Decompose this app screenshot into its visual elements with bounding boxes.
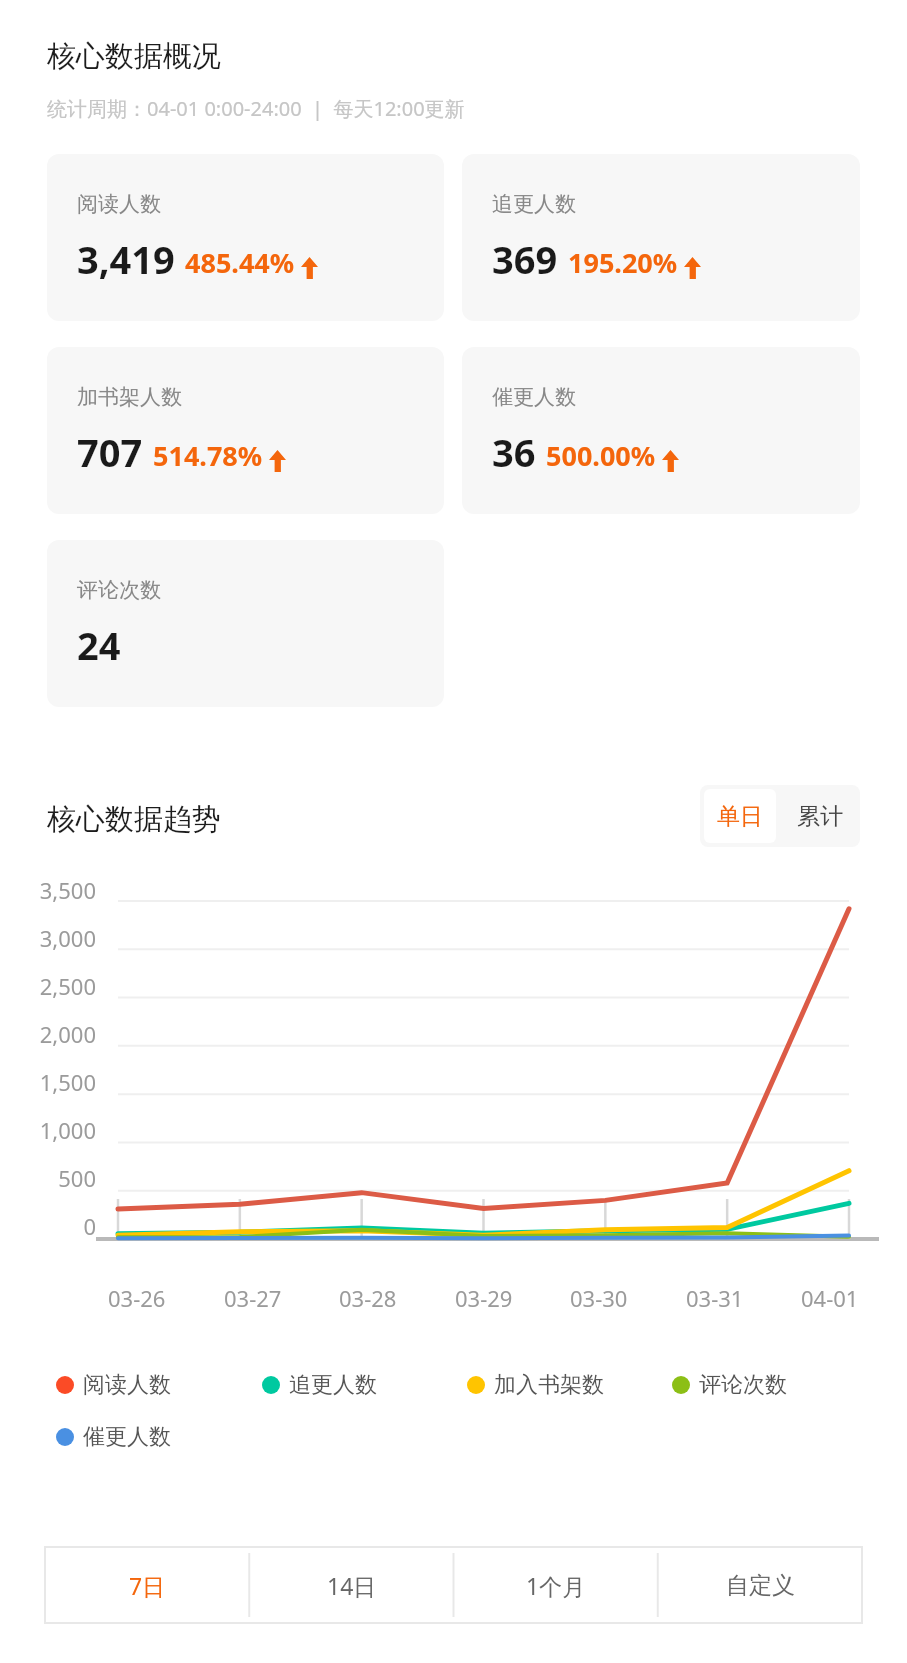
staticText: 追更人数 (289, 1371, 377, 1399)
staticText: 1个月 (526, 1570, 586, 1601)
staticText: 评论次数 (699, 1371, 787, 1399)
staticText: 03-27 (224, 1283, 282, 1313)
staticText: 03-29 (455, 1283, 513, 1313)
staticText: 195.20% (568, 244, 678, 281)
staticText: 催更人数 (492, 384, 576, 410)
staticText: 核心数据概况 (47, 38, 221, 75)
staticText: 03-31 (686, 1283, 744, 1313)
staticText: 0 (83, 1211, 96, 1241)
staticText: 04-01 (801, 1283, 859, 1313)
staticText: 加书架人数 (77, 384, 182, 410)
button[interactable]: 催更人数 (462, 347, 860, 514)
button[interactable]: 加书架人数 (47, 347, 444, 514)
staticText: 03-28 (339, 1283, 397, 1313)
staticText: 500.00% (546, 437, 656, 474)
staticText: 自定义 (726, 1571, 795, 1600)
staticText: 阅读人数 (77, 191, 161, 217)
staticText: 369 (492, 233, 558, 285)
staticText: 7日 (129, 1570, 166, 1601)
staticText: 500 (58, 1163, 96, 1193)
staticText: 3,000 (39, 923, 96, 953)
button[interactable]: 追更人数 (462, 154, 860, 321)
staticText: 514.78% (153, 437, 263, 474)
staticText: 追更人数 (492, 191, 576, 217)
button[interactable]: 阅读人数 (47, 154, 444, 321)
staticText: 单日 (717, 802, 763, 831)
staticText: 累计 (797, 802, 843, 831)
staticText: 03-30 (570, 1283, 628, 1313)
staticText: 2,000 (39, 1019, 96, 1049)
staticText: 707 (77, 426, 143, 478)
staticText: 核心数据趋势 (47, 801, 221, 838)
button[interactable]: 单日 (704, 789, 776, 843)
button[interactable]: 7日 (45, 1547, 250, 1623)
staticText: 1,500 (39, 1067, 96, 1097)
staticText: 14日 (327, 1570, 377, 1601)
staticText: 加入书架数 (494, 1371, 604, 1399)
staticText: 24 (77, 619, 121, 671)
button[interactable]: 1个月 (454, 1547, 658, 1623)
staticText: 3,419 (77, 233, 175, 285)
staticText: 1,000 (39, 1115, 96, 1145)
staticText: 评论次数 (77, 577, 161, 603)
staticText: 485.44% (185, 244, 295, 281)
staticText: 阅读人数 (83, 1371, 171, 1399)
staticText: 36 (492, 426, 536, 478)
staticText: 3,500 (39, 875, 96, 905)
button[interactable]: 14日 (250, 1547, 454, 1623)
staticText: 催更人数 (83, 1423, 171, 1451)
staticText: 03-26 (108, 1283, 166, 1313)
button[interactable]: 累计 (780, 785, 860, 847)
button[interactable]: 评论次数 (47, 540, 444, 707)
button[interactable]: 自定义 (658, 1547, 862, 1623)
staticText: 2,500 (39, 971, 96, 1001)
staticText: 统计周期：04-01 0:00-24:00 | 每天12:00更新 (47, 95, 465, 122)
